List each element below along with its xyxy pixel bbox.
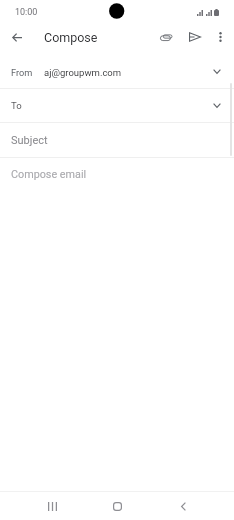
button[interactable]: Back	[5, 25, 29, 49]
button[interactable]: Back	[163, 492, 203, 520]
button[interactable]: Send	[183, 25, 207, 49]
button[interactable]: From	[0, 55, 234, 89]
staticText: 10:00	[15, 7, 38, 18]
button[interactable]: Compose email	[0, 158, 234, 192]
staticText: Compose email	[11, 168, 87, 181]
staticText: Subject	[11, 134, 48, 147]
button[interactable]: Home	[97, 492, 137, 520]
staticText: aj@groupwm.com	[44, 67, 122, 78]
button[interactable]: Recent apps	[32, 492, 72, 520]
staticText: Compose	[44, 30, 98, 45]
staticText: From	[11, 67, 33, 78]
button[interactable]: Attach file	[154, 25, 178, 49]
button[interactable]: Subject	[0, 123, 234, 158]
button[interactable]: More options	[209, 25, 232, 48]
button[interactable]: To	[0, 89, 234, 123]
staticText: To	[11, 100, 22, 111]
